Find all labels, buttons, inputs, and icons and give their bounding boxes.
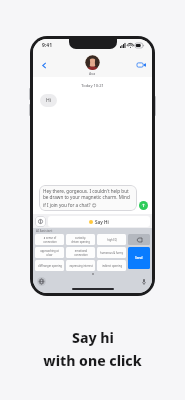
- staticText: Say Hi: [95, 219, 109, 225]
- staticText: humorous & funny: [100, 251, 123, 255]
- staticText: Hi: [46, 97, 51, 104]
- staticText: Say hi: [72, 328, 114, 347]
- button[interactable]: high EQ: [97, 234, 126, 245]
- staticText: with one click: [43, 351, 142, 370]
- button[interactable]: approaching at a bar: [35, 247, 64, 258]
- button[interactable]: Ava: [85, 55, 100, 76]
- button[interactable]: emotional connection: [66, 247, 95, 258]
- button[interactable]: Hi: [40, 94, 57, 107]
- staticText: 9:41: [42, 42, 52, 49]
- staticText: indirect opening: [102, 264, 122, 268]
- button[interactable]: cliffhanger opening: [35, 260, 64, 271]
- button[interactable]: Keyboard options: [35, 216, 46, 227]
- button[interactable]: expressing interest: [66, 260, 95, 271]
- button[interactable]: indirect opening: [97, 260, 126, 271]
- button[interactable]: Change keyboard: [37, 277, 46, 286]
- button[interactable]: curiosity- driven opening: [66, 234, 95, 245]
- staticText: expressing interest: [69, 264, 93, 268]
- staticText: Send: [135, 256, 143, 260]
- button[interactable]: Video call: [134, 58, 148, 72]
- button[interactable]: Send: [128, 247, 150, 269]
- staticText: AI Assistant: [36, 229, 53, 233]
- staticText: curiosity- driven opening: [71, 236, 90, 243]
- button[interactable]: Dictate: [139, 277, 148, 286]
- button[interactable]: Hey there, gorgeous. I couldn't help but…: [39, 185, 137, 211]
- staticText: cliffhanger opening: [38, 264, 62, 268]
- staticText: a sense of connection: [43, 236, 57, 243]
- staticText: approaching at a bar: [40, 249, 59, 256]
- button[interactable]: Send: [139, 201, 148, 210]
- staticText: Hey there, gorgeous. I couldn't help but…: [43, 188, 133, 208]
- staticText: Today 10:21: [33, 83, 152, 88]
- button[interactable]: a sense of connection: [35, 234, 64, 245]
- button[interactable]: Say Hi: [48, 216, 150, 227]
- staticText: high EQ: [107, 238, 117, 242]
- button[interactable]: humorous & funny: [97, 247, 126, 258]
- staticText: emotional connection: [74, 249, 88, 256]
- staticText: Ava: [89, 71, 96, 76]
- button[interactable]: Delete: [128, 234, 150, 245]
- button[interactable]: Back: [37, 58, 51, 72]
